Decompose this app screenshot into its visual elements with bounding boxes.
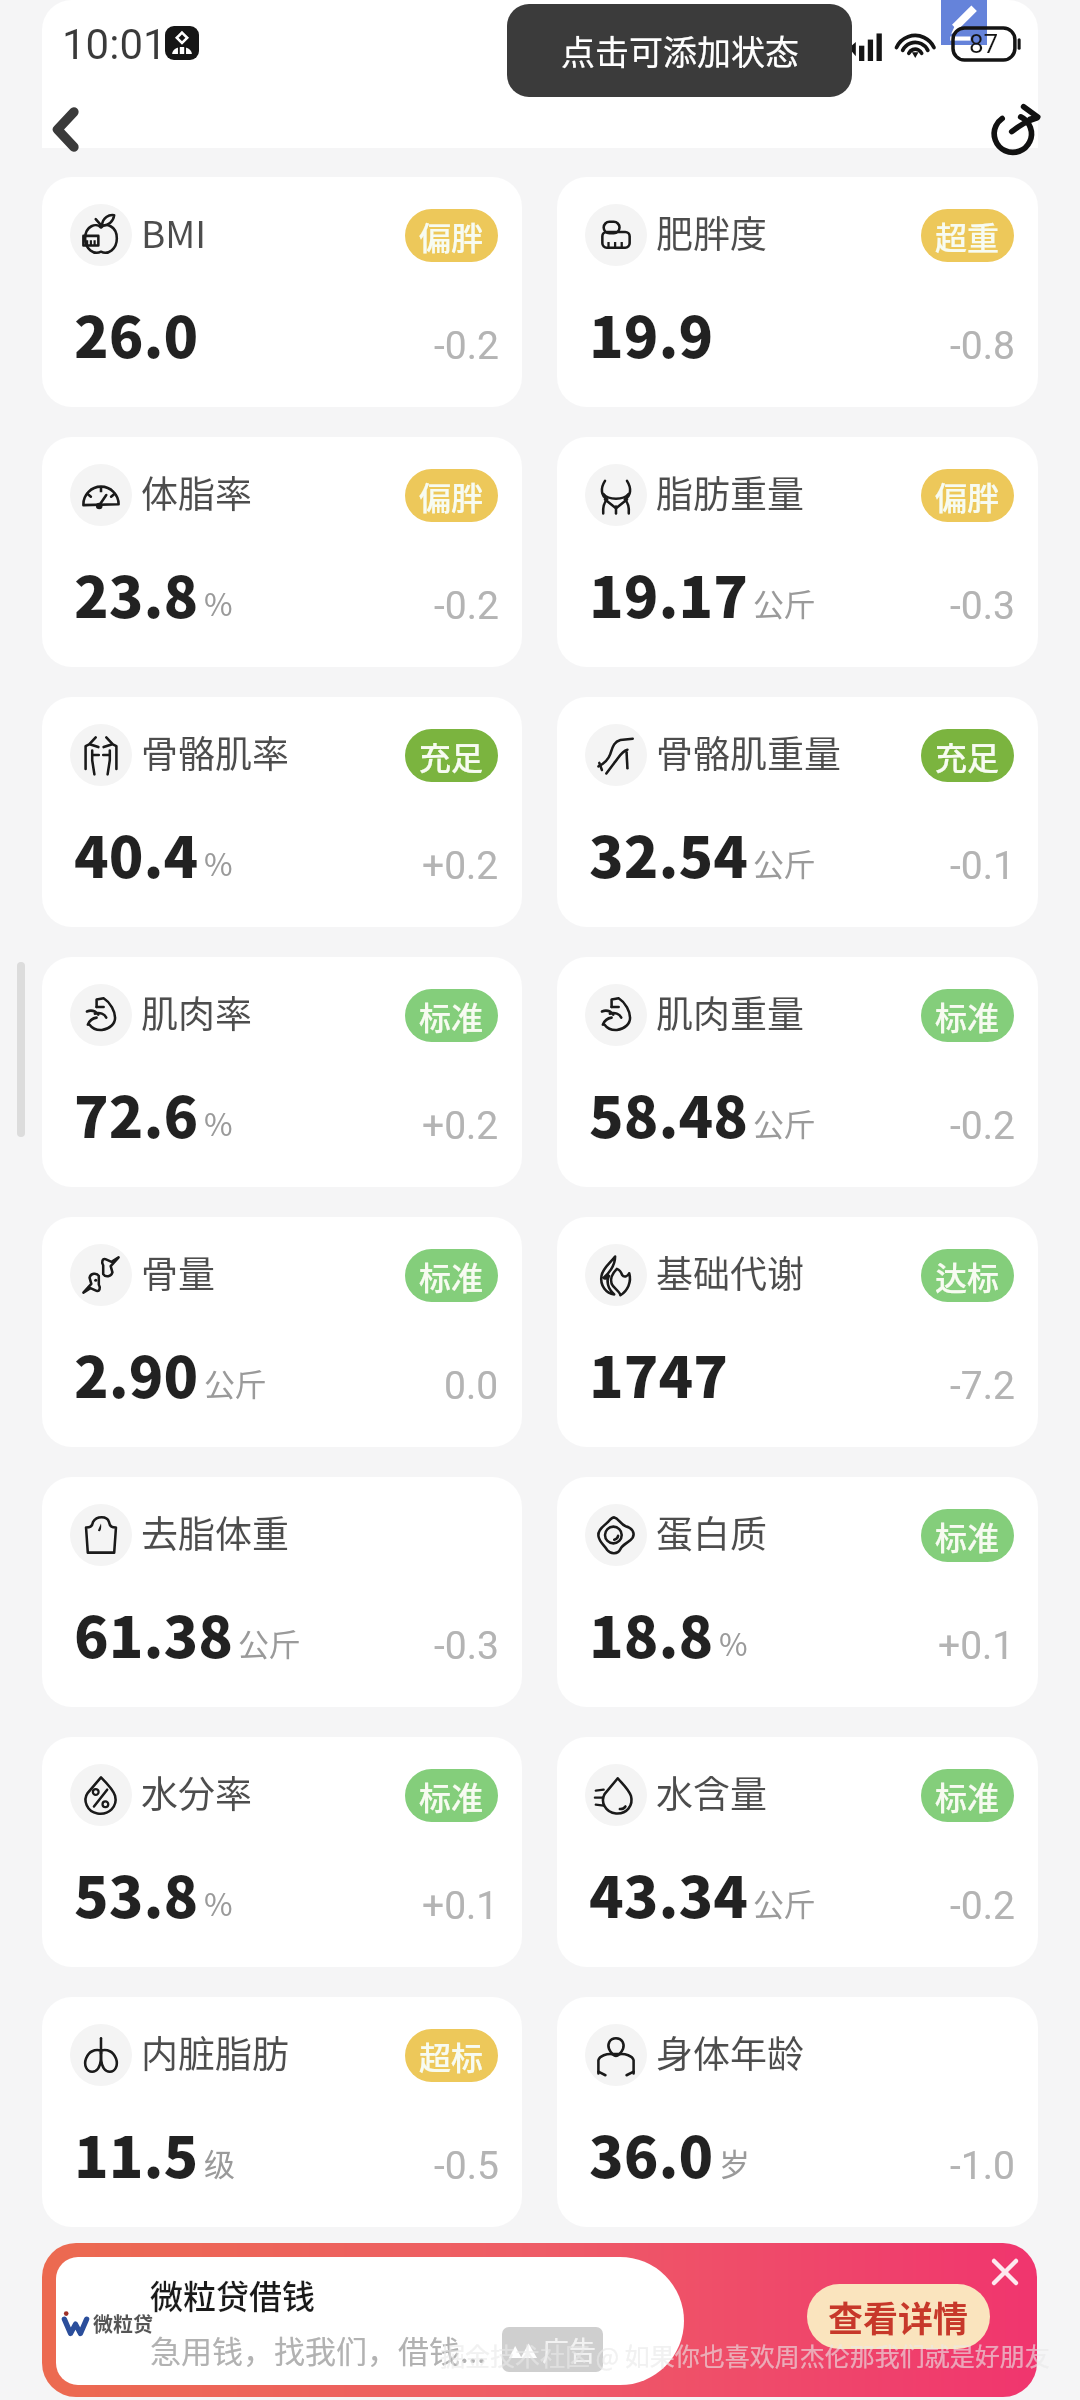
staticText: 骨骼肌率	[141, 725, 289, 779]
button[interactable]: 返回	[32, 101, 98, 157]
staticText: 23.8	[74, 552, 199, 622]
staticText: 标准	[935, 993, 1000, 1039]
staticText: 2.90	[74, 1332, 199, 1402]
staticText: 肌肉率	[141, 985, 252, 1039]
button[interactable]: 查看详情	[807, 2284, 990, 2349]
staticText: 超标	[419, 2033, 484, 2079]
staticText: 40.4	[74, 812, 199, 882]
staticText: 标准	[935, 1773, 1000, 1819]
staticText: %	[204, 1880, 233, 1925]
button[interactable]: 关闭	[985, 2252, 1025, 2292]
staticText: BMI	[141, 205, 207, 259]
staticText: 蛋白质	[656, 1505, 767, 1559]
staticText: -0.3	[950, 583, 1015, 629]
staticText: 水含量	[656, 1765, 767, 1819]
staticText: 达标	[935, 1253, 1000, 1299]
staticText: 骨量	[141, 1245, 215, 1299]
staticText: 公斤	[753, 840, 815, 885]
button[interactable]: 骨骼肌重量	[557, 697, 1038, 927]
staticText: 基础代谢	[656, 1245, 804, 1299]
staticText: +0.1	[422, 1883, 499, 1929]
staticText: %	[204, 580, 233, 625]
staticText: 岁	[719, 2140, 750, 2185]
button[interactable]: BMI	[42, 177, 522, 407]
staticText: 1747	[589, 1332, 728, 1402]
staticText: 广告	[542, 2330, 596, 2369]
staticText: 偏胖	[935, 473, 1000, 519]
button[interactable]: 身体年龄	[557, 1997, 1038, 2227]
staticText: %	[204, 1100, 233, 1145]
staticText: +0.2	[422, 1103, 499, 1149]
staticText: -0.2	[434, 583, 499, 629]
staticText: 0.0	[444, 1363, 499, 1409]
button[interactable]: 肌肉重量	[557, 957, 1038, 1187]
staticText: 58.48	[589, 1072, 748, 1142]
staticText: 26.0	[74, 292, 199, 362]
staticText: 公斤	[204, 1360, 266, 1405]
staticText: -0.1	[950, 843, 1015, 889]
button[interactable]: 水分率	[42, 1737, 522, 1967]
staticText: %	[204, 840, 233, 885]
staticText: 53.8	[74, 1852, 199, 1922]
staticText: 超重	[935, 213, 1000, 259]
staticText: 肥胖度	[656, 205, 767, 259]
staticText: 偏胖	[419, 473, 484, 519]
button[interactable]: 蛋白质	[557, 1477, 1038, 1707]
staticText: 偏胖	[419, 213, 484, 259]
button[interactable]: 微粒贷	[42, 2243, 1037, 2397]
staticText: 去脂体重	[141, 1505, 289, 1559]
staticText: 87	[969, 29, 999, 59]
button[interactable]: 骨骼肌率	[42, 697, 522, 927]
staticText: 水分率	[141, 1765, 252, 1819]
button[interactable]: 内脏脂肪	[42, 1997, 522, 2227]
staticText: %	[719, 1620, 748, 1665]
button[interactable]: 体脂率	[42, 437, 522, 667]
staticText: -0.3	[434, 1623, 499, 1669]
staticText: 61.38	[74, 1592, 233, 1662]
staticText: 19.17	[589, 552, 748, 622]
staticText: 10:01	[62, 20, 167, 69]
button[interactable]: 骨量	[42, 1217, 522, 1447]
button[interactable]: 刷新	[980, 102, 1050, 158]
staticText: -0.8	[950, 323, 1015, 369]
staticText: 微粒贷借钱	[150, 2271, 315, 2319]
staticText: 点击可添加状态	[561, 26, 799, 75]
staticText: 体脂率	[141, 465, 252, 519]
staticText: 43.34	[589, 1852, 748, 1922]
staticText: 20.4 5G	[770, 11, 850, 43]
staticText: 掘金技术社区 @ 如果你也喜欢周杰伦那我们就是好朋友	[440, 2337, 1050, 2373]
staticText: -0.5	[434, 2143, 499, 2189]
staticText: 查看详情	[828, 2291, 969, 2342]
staticText: -0.2	[434, 323, 499, 369]
staticText: -0.2	[950, 1883, 1015, 1929]
button[interactable]: 去脂体重	[42, 1477, 522, 1707]
staticText: 骨骼肌重量	[656, 725, 841, 779]
staticText: 充足	[935, 733, 1000, 779]
staticText: 急用钱，找我们，借钱...	[150, 2327, 486, 2372]
staticText: 18.8	[589, 1592, 714, 1662]
staticText: -7.2	[950, 1363, 1015, 1409]
staticText: 级	[204, 2140, 235, 2185]
button[interactable]: 基础代谢	[557, 1217, 1038, 1447]
staticText: +0.1	[938, 1623, 1015, 1669]
staticText: 标准	[935, 1513, 1000, 1559]
button[interactable]: 肌肉率	[42, 957, 522, 1187]
staticText: 身体年龄	[656, 2025, 804, 2079]
staticText: 32.54	[589, 812, 748, 882]
staticText: 脂肪重量	[656, 465, 804, 519]
staticText: 肌肉重量	[656, 985, 804, 1039]
button[interactable]: 水含量	[557, 1737, 1038, 1967]
staticText: KB/s	[793, 43, 850, 73]
staticText: 19.9	[589, 292, 714, 362]
staticText: 36.0	[589, 2112, 714, 2182]
staticText: 充足	[419, 733, 484, 779]
staticText: +0.2	[422, 843, 499, 889]
staticText: -0.2	[950, 1103, 1015, 1149]
staticText: 内脏脂肪	[141, 2025, 289, 2079]
staticText: 公斤	[753, 1100, 815, 1145]
button[interactable]: 脂肪重量	[557, 437, 1038, 667]
button[interactable]: 肥胖度	[557, 177, 1038, 407]
staticText: 微粒贷	[93, 2309, 153, 2338]
staticText: 72.6	[74, 1072, 199, 1142]
staticText: 11.5	[74, 2112, 199, 2182]
